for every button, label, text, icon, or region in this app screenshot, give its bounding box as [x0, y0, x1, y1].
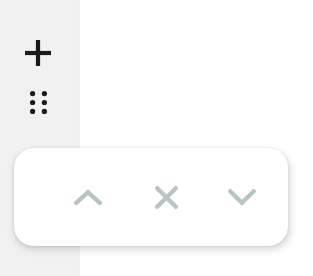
button[interactable]: Apps	[20, 84, 56, 120]
button[interactable]: Add	[18, 33, 58, 73]
button[interactable]: Close	[140, 171, 192, 223]
button[interactable]: Previous	[62, 171, 114, 223]
button[interactable]: Next	[216, 171, 268, 223]
